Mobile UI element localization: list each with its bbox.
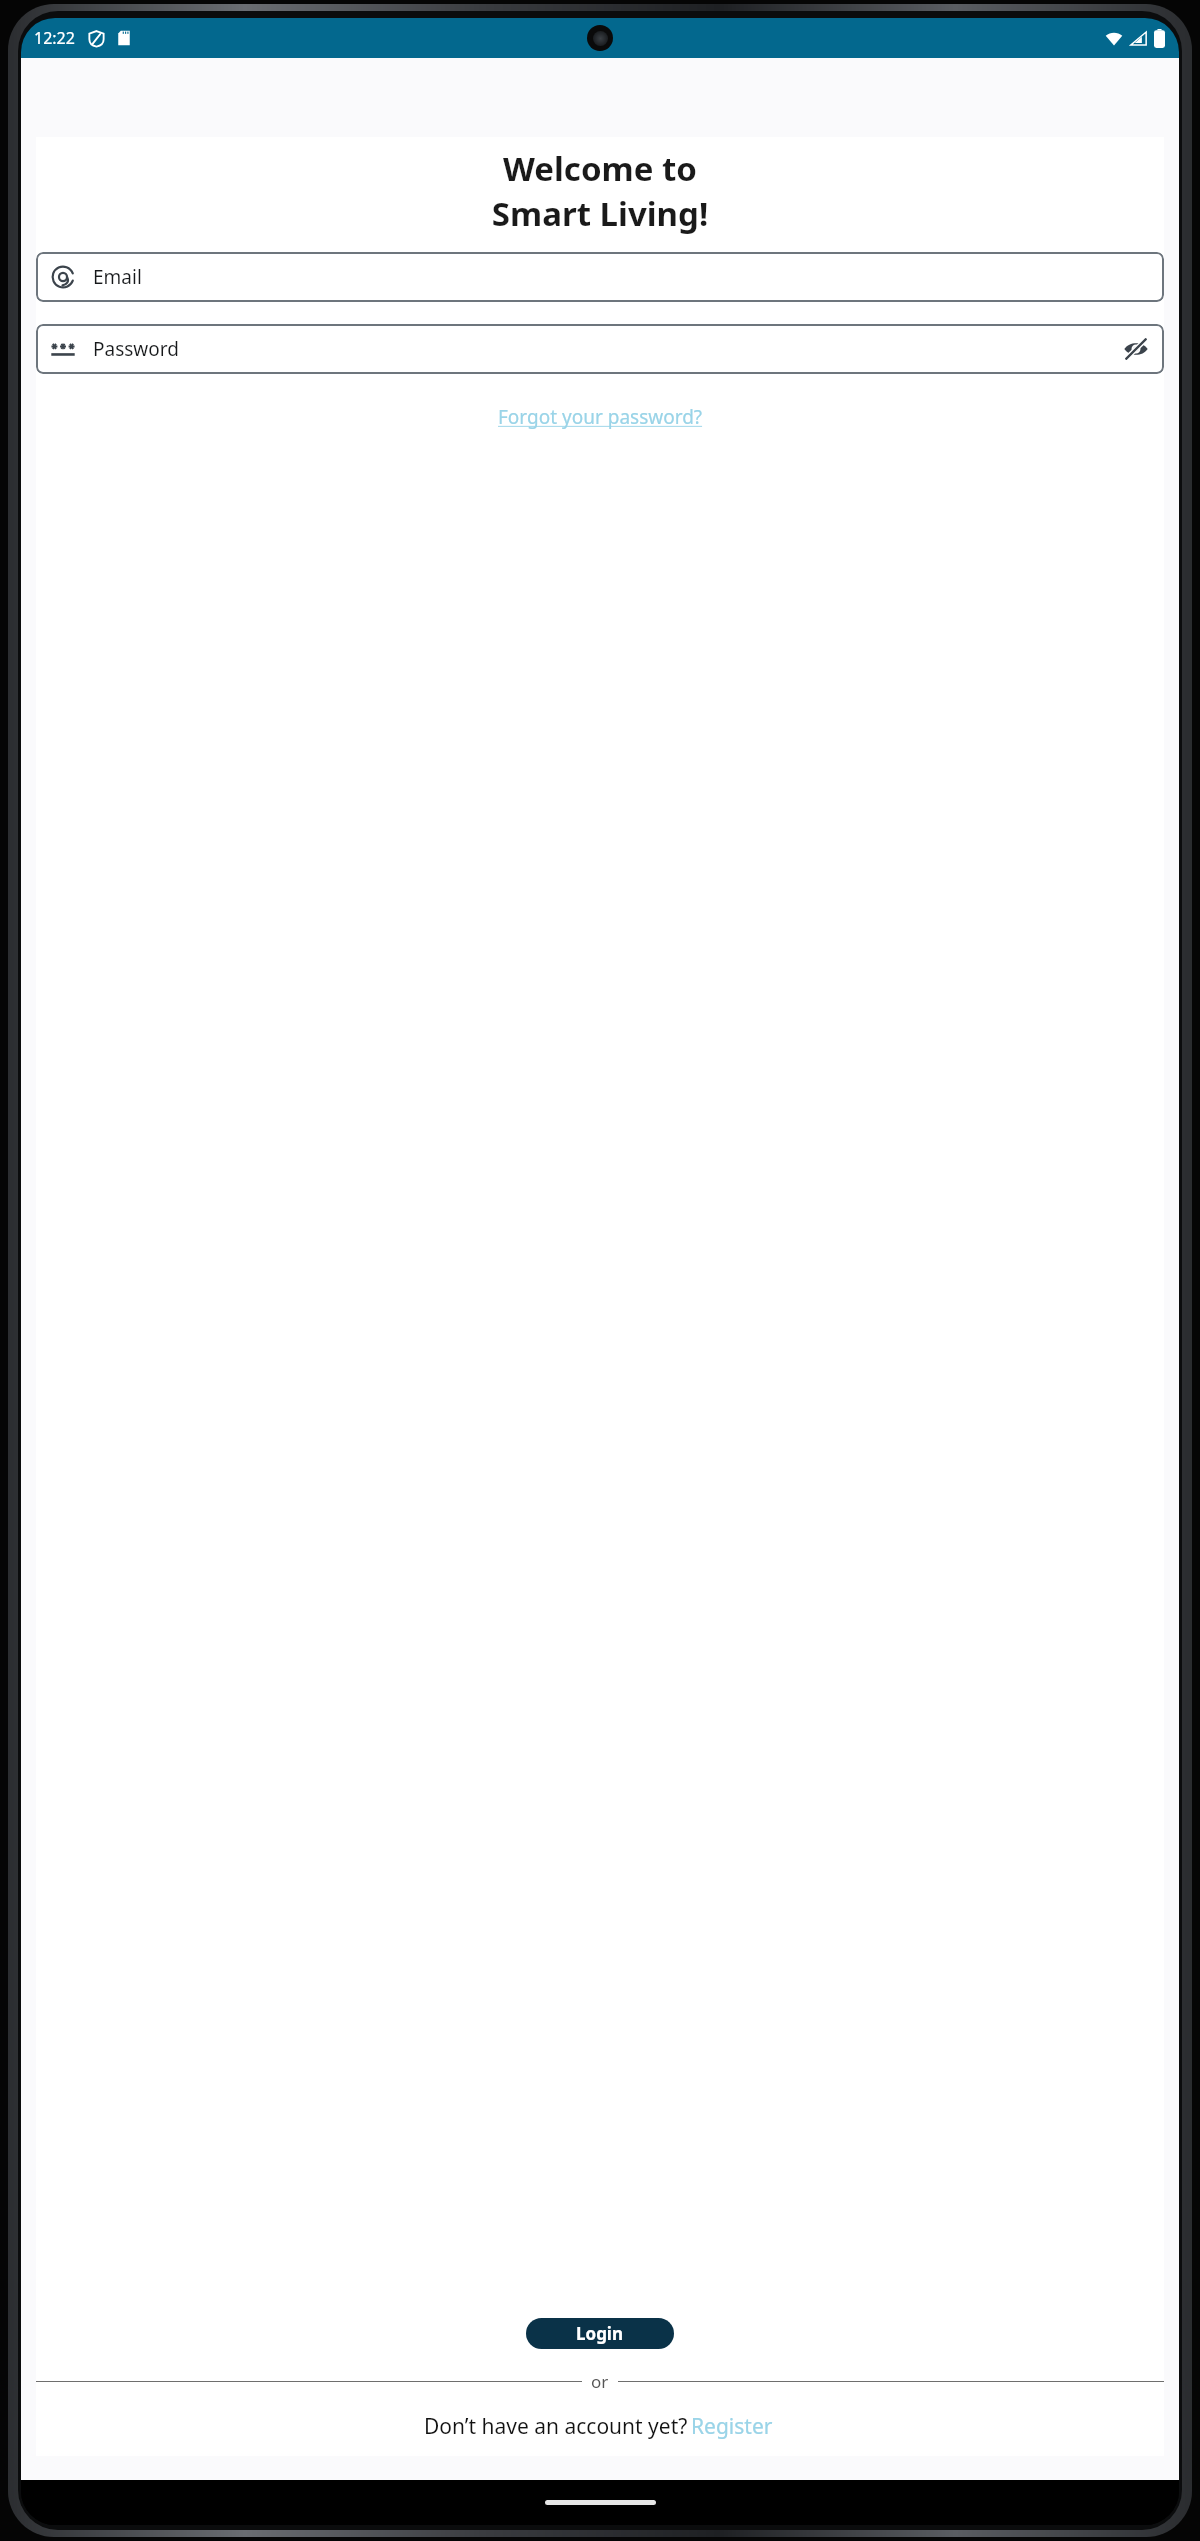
- staticText: Email: [93, 264, 142, 290]
- staticText: Register: [691, 2412, 773, 2441]
- button[interactable]: Password: [36, 324, 1164, 374]
- staticText: Login: [576, 2322, 624, 2345]
- staticText: 12:22: [34, 27, 75, 49]
- button[interactable]: Register: [688, 2410, 776, 2443]
- staticText: Forgot your password?: [498, 404, 703, 430]
- button[interactable]: Forgot your password?: [494, 402, 707, 432]
- button[interactable]: Login: [526, 2318, 674, 2349]
- staticText: Welcome to: [36, 146, 1164, 191]
- staticText: Smart Living!: [36, 191, 1164, 236]
- staticText: or: [591, 2370, 609, 2393]
- button[interactable]: Email: [36, 252, 1164, 302]
- button[interactable]: Show password: [1121, 334, 1151, 364]
- staticText: Don’t have an account yet?: [424, 2412, 688, 2441]
- staticText: Password: [93, 336, 179, 362]
